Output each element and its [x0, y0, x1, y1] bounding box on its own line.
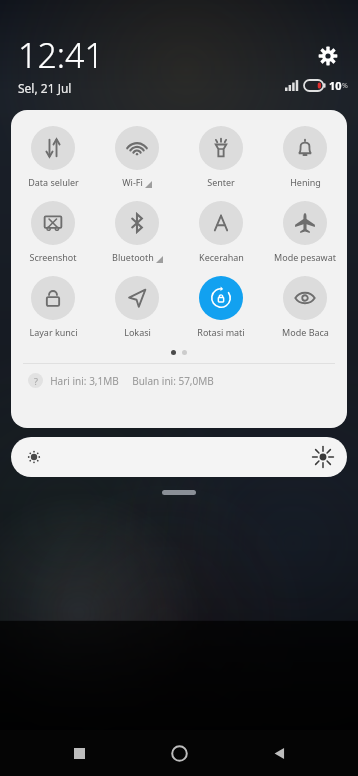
button[interactable] — [162, 490, 196, 495]
staticText: 10 — [329, 78, 342, 93]
button[interactable]: Screenshot — [11, 197, 95, 267]
button[interactable]: Wi-Fi — [95, 122, 179, 192]
button[interactable]: ? — [11, 373, 347, 388]
button[interactable]: Rotasi mati — [179, 272, 263, 342]
staticText: 12:41 — [18, 32, 104, 78]
staticText: Hari ini: 3,1MB — [50, 374, 119, 388]
staticText: Mode Baca — [282, 326, 329, 338]
button[interactable]: Hening — [263, 122, 347, 192]
button[interactable]: Mode Baca — [263, 272, 347, 342]
button[interactable]: Settings — [312, 40, 344, 72]
staticText: % — [342, 81, 348, 91]
staticText: Kecerahan — [199, 251, 244, 263]
staticText: Data seluler — [28, 176, 79, 188]
staticText: Bluetooth — [112, 251, 154, 263]
staticText: Rotasi mati — [197, 326, 245, 338]
button[interactable]: Data seluler — [11, 122, 95, 192]
staticText: ? — [34, 375, 38, 387]
staticText: Bulan ini: 57,0MB — [132, 374, 214, 388]
button[interactable]: Senter — [179, 122, 263, 192]
staticText: Lokasi — [124, 326, 151, 338]
button[interactable]: Lokasi — [95, 272, 179, 342]
staticText: Sel, 21 Jul — [18, 80, 72, 96]
button[interactable]: Back — [229, 730, 329, 776]
button[interactable]: Recent apps — [29, 730, 129, 776]
staticText: Hening — [290, 176, 321, 188]
button[interactable]: Bluetooth — [95, 197, 179, 267]
staticText: Wi-Fi — [122, 176, 143, 188]
staticText: Senter — [207, 176, 235, 188]
button[interactable]: Mode pesawat — [263, 197, 347, 267]
button[interactable]: Layar kunci — [11, 272, 95, 342]
button[interactable]: Home — [129, 730, 229, 776]
staticText: Mode pesawat — [274, 251, 336, 263]
button[interactable] — [11, 437, 347, 477]
staticText: Layar kunci — [29, 326, 78, 338]
staticText: Screenshot — [29, 251, 77, 263]
button[interactable]: Kecerahan — [179, 197, 263, 267]
